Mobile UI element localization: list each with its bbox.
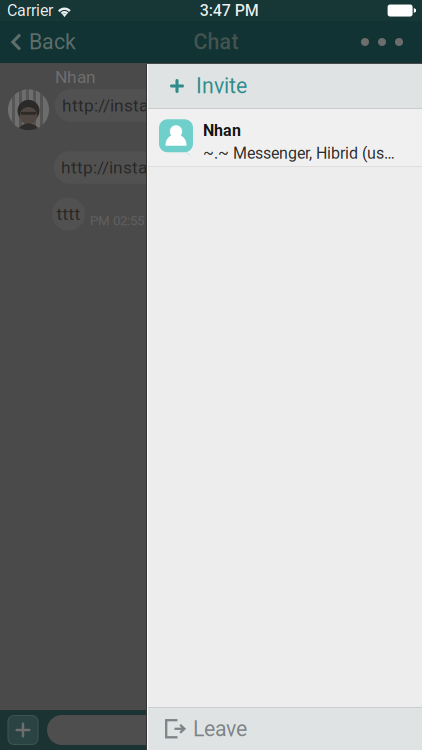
- button[interactable]: Leave: [148, 708, 422, 750]
- button[interactable]: Add attachment: [8, 715, 38, 744]
- staticText: PM 02:55: [90, 213, 144, 229]
- staticText: http://install.com/aaa: [61, 157, 228, 178]
- button[interactable]: Back: [0, 21, 86, 63]
- staticText: tttt: [56, 204, 80, 224]
- staticText: 3:47 PM: [200, 1, 259, 20]
- staticText: Chat: [193, 29, 238, 54]
- staticText: http://install.com/aaa: [62, 95, 229, 116]
- button[interactable]: Invite: [148, 64, 422, 108]
- button[interactable]: Nhan: [148, 109, 422, 166]
- staticText: ~.~ Messenger, Hibrid (used…: [203, 144, 396, 163]
- staticText: Nhan: [55, 67, 96, 87]
- staticText: Carrier: [7, 1, 53, 20]
- button[interactable]: More options: [346, 21, 422, 63]
- staticText: Invite: [196, 73, 247, 98]
- staticText: Nhan: [203, 121, 241, 140]
- staticText: Back: [29, 29, 76, 54]
- staticText: Leave: [193, 716, 247, 741]
